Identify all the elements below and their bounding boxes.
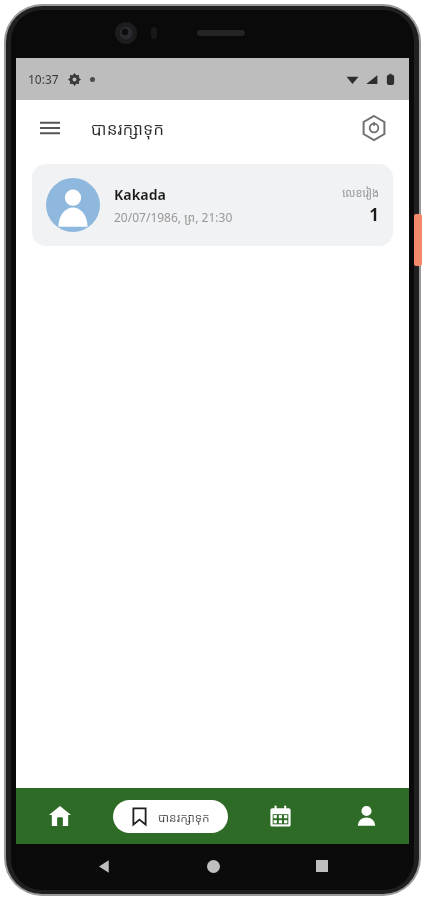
button[interactable]: Home xyxy=(16,788,103,844)
button[interactable]: Kakada xyxy=(32,164,393,246)
staticText: បានរក្សាទុក xyxy=(158,809,210,825)
button[interactable]: Recents xyxy=(300,844,344,888)
button[interactable]: Home xyxy=(191,844,235,888)
button[interactable]: Menu xyxy=(32,110,68,146)
button[interactable]: Settings xyxy=(355,109,393,147)
button[interactable]: Calendar xyxy=(237,788,323,844)
staticText: 1 xyxy=(369,203,379,226)
button[interactable]: Back xyxy=(81,844,125,888)
staticText: បានរក្សាទុក xyxy=(91,117,165,140)
staticText: 20/07/1986, ព្រ, 21:30 xyxy=(114,209,233,225)
button[interactable]: បានរក្សាទុក xyxy=(113,800,228,833)
staticText: 10:37 xyxy=(28,71,59,87)
staticText: លេខរៀង xyxy=(342,185,379,200)
staticText: Kakada xyxy=(114,185,166,204)
button[interactable]: Profile xyxy=(323,788,409,844)
